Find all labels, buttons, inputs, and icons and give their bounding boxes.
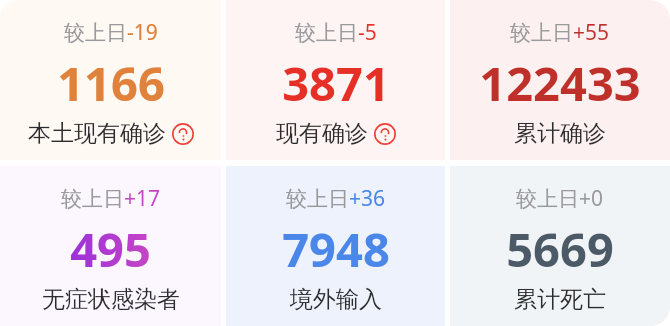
- staticText: -19: [127, 18, 158, 47]
- staticText: 较上日: [295, 20, 358, 46]
- staticText: 较上日: [64, 20, 127, 46]
- staticText: 本土现有确诊: [28, 119, 166, 148]
- staticText: 122433: [479, 51, 641, 115]
- staticText: +17: [124, 184, 161, 213]
- button[interactable]: 较上日: [0, 166, 221, 326]
- staticText: +55: [573, 18, 610, 47]
- staticText: 无症状感染者: [42, 285, 180, 314]
- staticText: 7948: [282, 217, 390, 281]
- button[interactable]: 较上日: [226, 166, 445, 326]
- staticText: +0: [579, 184, 604, 213]
- staticText: 较上日: [61, 186, 124, 212]
- button[interactable]: 较上日: [450, 166, 670, 326]
- button[interactable]: Help: [374, 123, 396, 145]
- staticText: -5: [358, 18, 377, 47]
- staticText: 较上日: [510, 20, 573, 46]
- staticText: 5669: [506, 217, 614, 281]
- staticText: 1166: [57, 51, 165, 115]
- button[interactable]: Help: [172, 123, 194, 145]
- button[interactable]: 较上日: [226, 0, 445, 160]
- staticText: 累计确诊: [514, 119, 606, 148]
- staticText: +36: [349, 184, 386, 213]
- staticText: 较上日: [516, 186, 579, 212]
- staticText: 累计死亡: [514, 285, 606, 314]
- staticText: 境外输入: [290, 285, 382, 314]
- staticText: 3871: [282, 51, 390, 115]
- staticText: 495: [70, 217, 151, 281]
- staticText: 较上日: [286, 186, 349, 212]
- staticText: 现有确诊: [276, 119, 368, 148]
- button[interactable]: 较上日: [0, 0, 221, 160]
- button[interactable]: 较上日: [450, 0, 670, 160]
